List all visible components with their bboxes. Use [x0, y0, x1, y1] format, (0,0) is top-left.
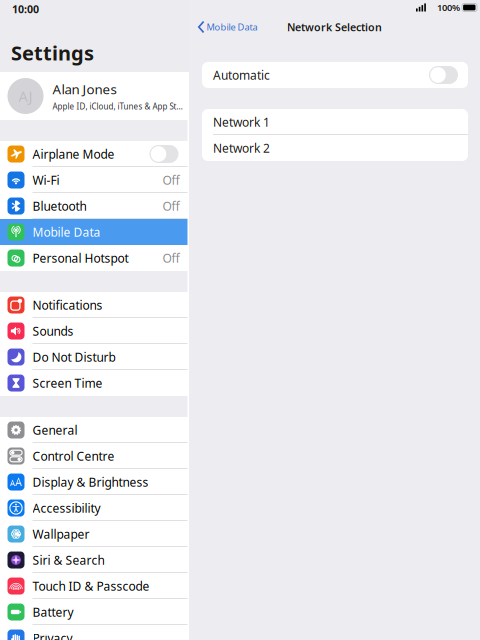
staticText: Bluetooth — [32, 198, 86, 214]
button[interactable]: Wi-Fi — [0, 167, 187, 193]
staticText: Sounds — [32, 323, 73, 339]
staticText: Siri & Search — [32, 552, 104, 568]
staticText: Wi-Fi — [32, 172, 59, 188]
button[interactable]: Privacy — [0, 625, 187, 640]
button[interactable]: Battery — [0, 599, 187, 625]
staticText: 100% — [437, 1, 460, 14]
staticText: Display & Brightness — [32, 474, 148, 490]
staticText: Automatic — [213, 67, 270, 83]
button[interactable]: Network 2 — [202, 135, 468, 161]
button[interactable]: Airplane Mode — [0, 141, 187, 167]
button[interactable]: Do Not Disturb — [0, 344, 187, 370]
staticText: Network 1 — [213, 114, 270, 130]
staticText: Touch ID & Passcode — [32, 578, 149, 594]
staticText: Off — [162, 172, 179, 188]
staticText: 10:00 — [12, 2, 39, 16]
staticText: Accessibility — [32, 500, 100, 516]
button[interactable]: Wallpaper — [0, 521, 187, 547]
staticText: Off — [162, 198, 179, 214]
staticText: Network Selection — [287, 20, 382, 34]
staticText: Mobile Data — [32, 224, 100, 240]
button[interactable]: Siri & Search — [0, 547, 187, 573]
staticText: Alan Jones — [52, 80, 116, 98]
staticText: Notifications — [32, 297, 102, 313]
staticText: Control Centre — [32, 448, 114, 464]
button[interactable]: General — [0, 417, 187, 443]
button[interactable]: Personal Hotspot — [0, 245, 187, 271]
button[interactable]: Notifications — [0, 292, 187, 318]
staticText: Wallpaper — [32, 526, 89, 542]
staticText: Off — [162, 250, 179, 266]
button[interactable]: Control Centre — [0, 443, 187, 469]
button[interactable]: Mobile Data — [0, 219, 187, 245]
button[interactable]: Network 1 — [202, 109, 468, 135]
staticText: Airplane Mode — [32, 146, 114, 162]
button[interactable]: Touch ID & Passcode — [0, 573, 187, 599]
staticText: Apple ID, iCloud, iTunes & App St… — [52, 101, 182, 112]
button[interactable]: AJ — [0, 72, 190, 120]
staticText: Personal Hotspot — [32, 250, 128, 266]
button[interactable]: Screen Time — [0, 370, 187, 396]
button[interactable]: Mobile Data — [189, 16, 263, 38]
staticText: Do Not Disturb — [32, 349, 115, 365]
button[interactable]: Accessibility — [0, 495, 187, 521]
staticText: AJ — [18, 86, 32, 106]
staticText: Privacy — [32, 630, 72, 640]
button[interactable]: Sounds — [0, 318, 187, 344]
staticText: General — [32, 422, 77, 438]
staticText: Network 2 — [213, 140, 270, 156]
button[interactable]: Display & Brightness — [0, 469, 187, 495]
button[interactable]: Bluetooth — [0, 193, 187, 219]
button[interactable]: Automatic — [202, 62, 468, 88]
staticText: Battery — [32, 604, 73, 620]
staticText: Mobile Data — [206, 21, 257, 33]
staticText: Screen Time — [32, 375, 102, 391]
staticText: Settings — [11, 39, 94, 66]
